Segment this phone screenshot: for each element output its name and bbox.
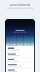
staticText: Live metrics, beautiful reports, zero se… [6,7,33,9]
staticText: Dashboard and Reporting [10,4,30,6]
